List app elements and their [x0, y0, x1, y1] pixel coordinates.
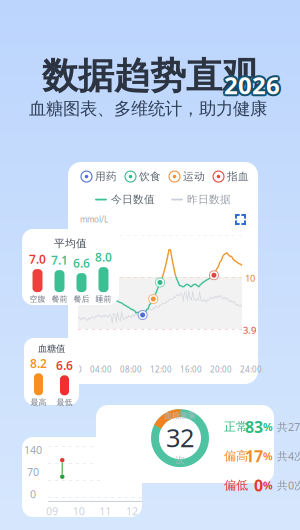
button[interactable]: 用药 — [81, 170, 117, 183]
staticText: 2026 — [224, 71, 280, 103]
staticText: 今日数值 — [111, 193, 155, 206]
staticText: 餐后 — [73, 294, 89, 304]
staticText: 140 — [24, 443, 42, 457]
staticText: mmol/L — [80, 214, 108, 225]
staticText: % — [263, 478, 273, 492]
staticText: 2026 — [226, 69, 282, 101]
staticText: 04:00 — [90, 364, 112, 375]
staticText: 最高 — [30, 397, 46, 407]
staticText: 16:00 — [180, 364, 202, 375]
staticText: 7.1 — [51, 252, 68, 268]
staticText: 20:00 — [210, 364, 232, 375]
staticText: 83 — [245, 416, 263, 437]
staticText: 血糖图表、多维统计，助力健康 — [29, 98, 267, 119]
staticText: 2026 — [222, 69, 278, 101]
staticText: 运动 — [183, 170, 205, 183]
staticText: 空腹 — [29, 294, 45, 304]
staticText: 共0次 — [277, 478, 300, 492]
staticText: 共27次 — [277, 420, 300, 434]
staticText: 0 — [254, 475, 263, 496]
button[interactable]: 饮食 — [125, 170, 161, 183]
staticText: 7.0 — [29, 251, 46, 267]
staticText: % — [263, 449, 273, 463]
staticText: % — [263, 420, 273, 434]
staticText: 睡前 — [95, 294, 111, 304]
staticText: 10 — [245, 272, 255, 284]
staticText: 饮食 — [139, 170, 161, 183]
staticText: 6.6 — [56, 357, 73, 373]
staticText: 正常 — [224, 419, 248, 434]
staticText: 24:00 — [240, 364, 262, 375]
staticText: 2026 — [222, 67, 278, 99]
staticText: 数据趋势直观 — [42, 54, 258, 98]
staticText: 00:00 — [60, 364, 82, 375]
staticText: 指血 — [227, 170, 249, 183]
staticText: 餐前 — [51, 294, 67, 304]
staticText: 8.0 — [95, 249, 112, 265]
staticText: 3.9 — [243, 324, 256, 336]
staticText: 2026 — [224, 69, 280, 101]
staticText: 昨日数据 — [187, 193, 231, 206]
staticText: 次 — [175, 454, 184, 466]
staticText: 08:00 — [120, 364, 142, 375]
staticText: 共4次 — [277, 449, 300, 463]
staticText: 70 — [27, 465, 39, 479]
staticText: 0 — [30, 487, 36, 501]
staticText: 偏高 — [224, 449, 248, 463]
staticText: 11 — [99, 504, 111, 518]
button[interactable]: Fullscreen — [235, 214, 246, 225]
staticText: 12 — [126, 504, 138, 518]
staticText: 血糖测量 — [164, 411, 196, 420]
staticText: 平均值 — [54, 237, 87, 250]
staticText: 血糖值 — [38, 343, 65, 354]
staticText: 2026 — [225, 70, 281, 102]
staticText: 2026 — [224, 67, 280, 99]
staticText: 2026 — [225, 67, 281, 99]
button[interactable]: 运动 — [169, 170, 205, 183]
staticText: 6.6 — [73, 255, 90, 271]
staticText: 12:00 — [150, 364, 172, 375]
staticText: 32 — [166, 420, 194, 454]
staticText: 10 — [73, 504, 85, 518]
button[interactable]: 指血 — [213, 170, 249, 183]
staticText: 17 — [245, 445, 263, 467]
staticText: 09 — [46, 504, 58, 518]
staticText: 2026 — [222, 70, 278, 102]
staticText: 8.2 — [30, 355, 47, 371]
staticText: 用药 — [95, 170, 117, 183]
staticText: 最低 — [56, 397, 72, 407]
staticText: 偏低 — [224, 478, 248, 493]
